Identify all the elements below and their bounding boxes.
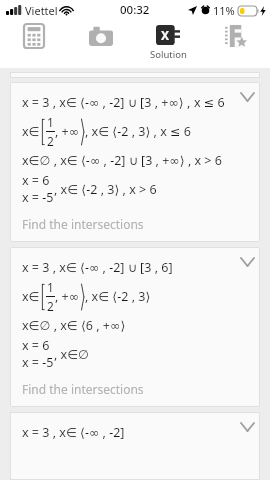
- staticText: x ≤ 6: [194, 94, 225, 111]
- staticText: , x∈ ⟨-2 , 3⟩: [85, 288, 151, 305]
- staticText: x = 3 , x∈ ⟨-∞ , -2] ∪ [3 , 6]: [22, 259, 173, 276]
- staticText: , x∈∅: [54, 346, 89, 363]
- staticText: 2: [47, 133, 54, 149]
- staticText: , +∞: [55, 123, 80, 140]
- button[interactable]: Camera: [67, 20, 134, 68]
- staticText: x∈∅ , x∈ ⟨6 , +∞⟩: [22, 317, 126, 334]
- button[interactable]: Expand: [236, 416, 258, 438]
- staticText: , x∈ ⟨-2 , 3⟩ , x > 6: [54, 181, 157, 198]
- button[interactable]: Expand: [236, 251, 258, 273]
- button[interactable]: x = 3 , x∈ ⟨-∞ , -2]: [10, 412, 260, 480]
- staticText: 1: [47, 114, 54, 130]
- staticText: x∈: [22, 288, 40, 305]
- staticText: Find the intersections: [22, 216, 144, 232]
- staticText: x = 3 , x∈ ⟨-∞ , -2]: [22, 424, 125, 441]
- staticText: x = -5: [22, 189, 54, 206]
- staticText: Find the intersections: [22, 381, 144, 397]
- button[interactable]: Notebook: [202, 20, 270, 68]
- staticText: x = 6: [22, 337, 50, 354]
- staticText: X: [161, 27, 170, 43]
- staticText: x = 3 , x∈ ⟨-∞ , -2] ∪ [3 , +∞⟩ ,: [22, 94, 194, 111]
- button[interactable]: x = 3 , x∈ ⟨-∞ , -2] ∪ [3 , 6]: [10, 247, 260, 407]
- staticText: Viettel: [25, 3, 58, 18]
- staticText: Solution: [150, 48, 187, 61]
- staticText: 11%: [213, 3, 235, 18]
- staticText: 1: [47, 279, 54, 295]
- staticText: 2: [47, 298, 54, 314]
- button[interactable]: Calculator: [0, 20, 67, 68]
- button[interactable]: x = 3 , x∈ ⟨-∞ , -2] ∪ [3 , +∞⟩ ,: [10, 82, 260, 242]
- staticText: x = 6: [22, 172, 50, 189]
- button[interactable]: Expand: [236, 86, 258, 108]
- staticText: x∈∅ , x∈ ⟨-∞ , -2] ∪ [3 , +∞⟩ , x > 6: [22, 152, 222, 169]
- staticText: x∈: [22, 123, 40, 140]
- staticText: x = -5: [22, 354, 54, 371]
- staticText: , +∞: [55, 288, 80, 305]
- staticText: , x∈ ⟨-2 , 3⟩ , x ≤ 6: [85, 123, 191, 140]
- button[interactable]: X: [134, 20, 202, 68]
- staticText: 00:32: [120, 2, 150, 18]
